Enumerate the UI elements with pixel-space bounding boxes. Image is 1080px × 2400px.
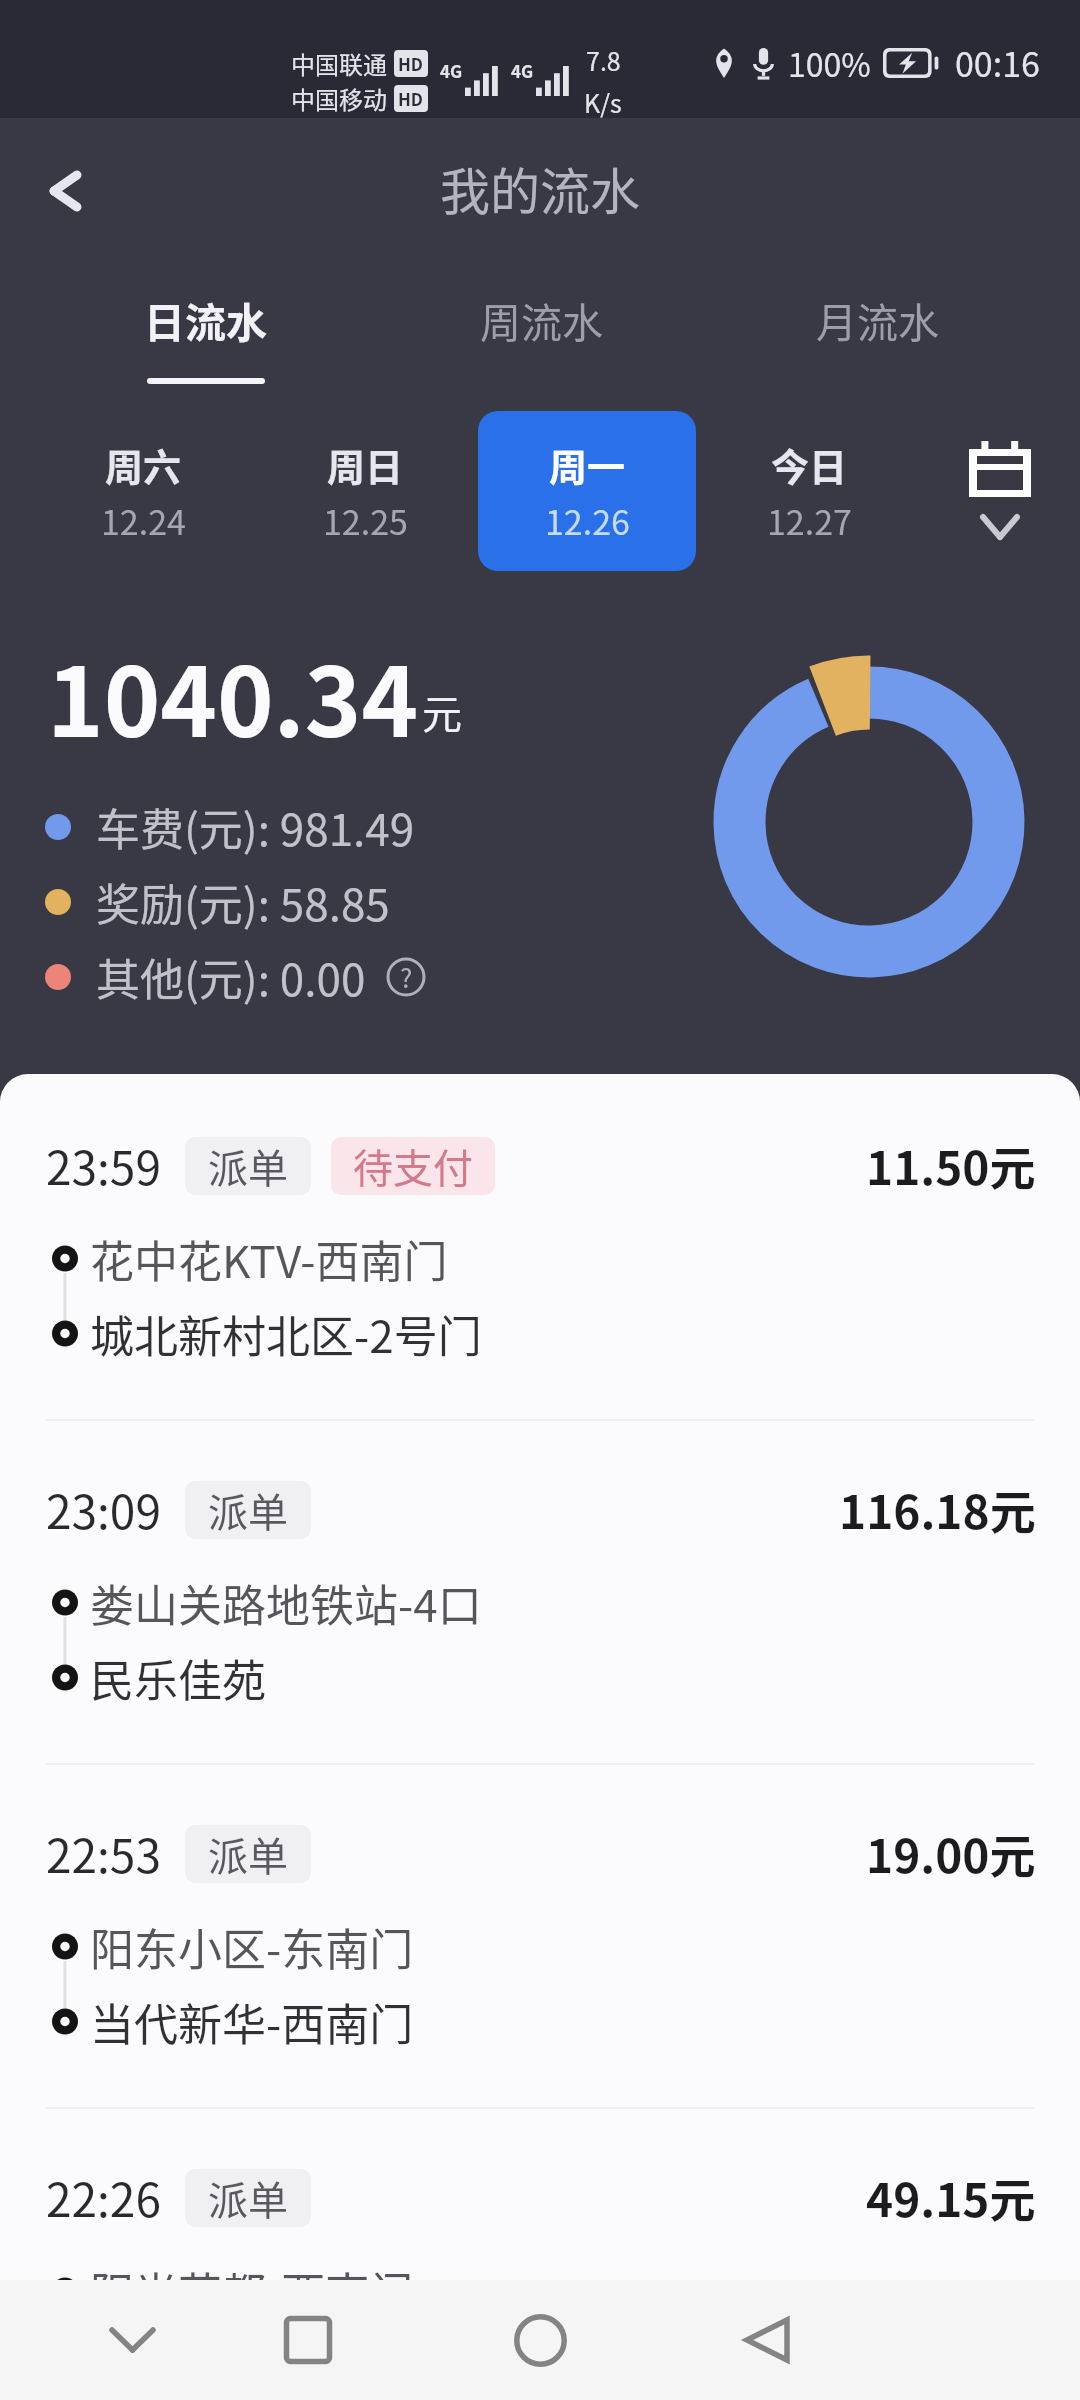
button[interactable]: Back — [20, 148, 110, 238]
staticText: 花中花KTV-西南门 — [90, 1227, 448, 1291]
staticText: 周一 — [549, 437, 626, 492]
button[interactable]: Recent apps — [261, 2280, 355, 2400]
staticText: K/s — [584, 84, 622, 120]
staticText: HD — [398, 51, 424, 76]
button[interactable]: 22:53 — [0, 1765, 1080, 2109]
staticText: 待支付 — [353, 1137, 473, 1195]
staticText: 周流水 — [480, 290, 603, 349]
staticText: 23:59 — [46, 1132, 161, 1199]
staticText: 周六 — [105, 437, 182, 492]
button[interactable]: 月流水 — [709, 268, 1045, 400]
button[interactable]: Hide keyboard — [85, 2280, 179, 2400]
staticText: 7.8 — [586, 42, 621, 78]
staticText: 11.50元 — [866, 1132, 1036, 1199]
staticText: 12.25 — [323, 496, 408, 545]
button[interactable]: 今日 — [700, 411, 918, 571]
staticText: 中国移动 — [291, 81, 387, 116]
button[interactable]: 23:09 — [0, 1421, 1080, 1765]
staticText: 阳光花都-西南门 — [90, 2259, 414, 2323]
staticText: 22:53 — [46, 1820, 161, 1887]
staticText: 00:16 — [955, 38, 1040, 87]
button[interactable]: 23:59 — [0, 1077, 1080, 1421]
staticText: 周日 — [327, 437, 404, 492]
staticText: 派单 — [208, 2169, 288, 2227]
staticText: 今日 — [771, 437, 848, 492]
staticText: 12.26 — [545, 496, 630, 545]
staticText: 元 — [422, 683, 462, 741]
button[interactable]: 周六 — [34, 411, 252, 571]
staticText: 月流水 — [816, 290, 939, 349]
button[interactable]: 周流水 — [373, 268, 709, 400]
staticText: 1040.34 — [47, 626, 419, 765]
staticText: 派单 — [208, 1137, 288, 1195]
staticText: 12.27 — [767, 496, 852, 545]
staticText: 116.18元 — [839, 1476, 1036, 1543]
staticText: 车费(元): 981.49 — [96, 795, 415, 859]
button[interactable]: Home — [493, 2280, 587, 2400]
staticText: 我的流水 — [440, 152, 640, 224]
button[interactable]: 22:26 — [0, 2109, 1080, 2400]
staticText: 12.24 — [101, 496, 186, 545]
button[interactable]: Back — [720, 2280, 814, 2400]
staticText: 23:09 — [46, 1476, 161, 1543]
staticText: 派单 — [208, 1481, 288, 1539]
staticText: 奖励(元): 58.85 — [96, 870, 390, 934]
staticText: 49.15元 — [866, 2164, 1036, 2231]
staticText: 日流水 — [144, 290, 267, 349]
staticText: 派单 — [208, 1825, 288, 1883]
staticText: 其他(元): 0.00 — [96, 945, 366, 1009]
staticText: 阳东小区-东南门 — [90, 1915, 414, 1979]
staticText: 民乐佳苑 — [90, 1646, 266, 1710]
staticText: 4G — [511, 58, 534, 83]
staticText: ? — [400, 958, 413, 996]
staticText: 城北新村北区-2号门 — [90, 1302, 482, 1366]
button[interactable]: Calendar picker — [920, 396, 1080, 586]
staticText: 当代新华-西南门 — [90, 1990, 414, 2054]
button[interactable]: 周一 — [478, 411, 696, 571]
button[interactable]: 周日 — [256, 411, 474, 571]
button[interactable]: 日流水 — [37, 268, 373, 400]
staticText: HD — [398, 86, 424, 111]
staticText: 4G — [440, 58, 463, 83]
staticText: 19.00元 — [866, 1820, 1036, 1887]
staticText: 100% — [788, 40, 871, 86]
staticText: 22:26 — [46, 2164, 161, 2231]
staticText: 中国联通 — [291, 46, 387, 81]
staticText: 娄山关路地铁站-4口 — [90, 1571, 482, 1635]
button[interactable]: Help — [386, 957, 426, 997]
